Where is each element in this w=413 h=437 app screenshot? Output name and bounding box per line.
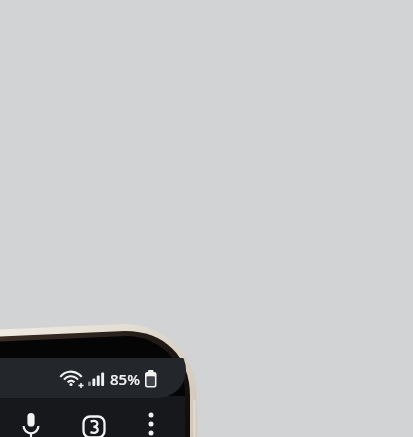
button[interactable]: Phone screen photo (0, 0, 413, 437)
